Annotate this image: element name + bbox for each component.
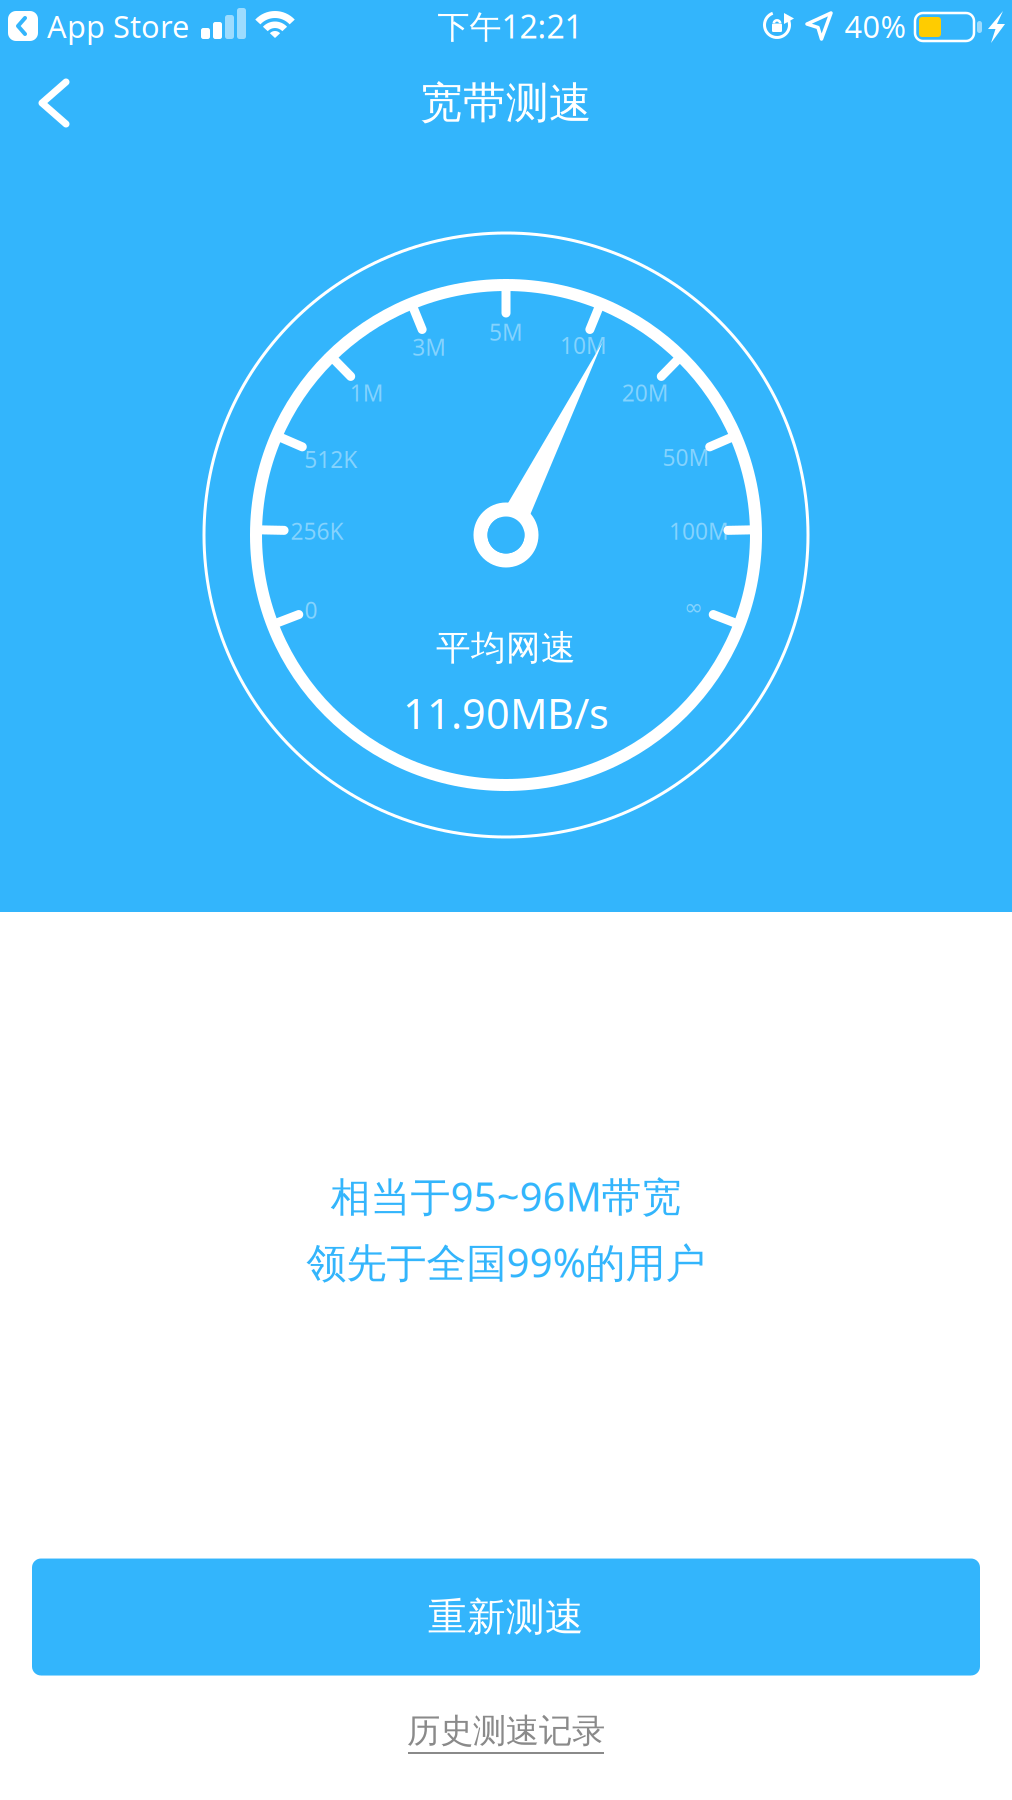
staticText: 下午12:21 — [437, 5, 582, 47]
staticText: 256K — [290, 516, 343, 546]
button[interactable]: Back — [2, 55, 114, 151]
staticText: 10M — [560, 330, 607, 360]
staticText: 宽带测速 — [420, 77, 592, 129]
staticText: ∞ — [684, 594, 703, 620]
staticText: 相当于95~96M带宽 — [330, 1169, 681, 1222]
staticText: 领先于全国99%的用户 — [306, 1235, 705, 1288]
staticText: 1M — [350, 378, 384, 408]
staticText: 平均网速 — [436, 627, 576, 669]
staticText: App Store — [47, 6, 189, 46]
staticText: 历史测速记录 — [407, 1710, 605, 1751]
staticText: 50M — [662, 442, 709, 472]
button[interactable]: 重新测速 — [32, 1558, 980, 1675]
staticText: 11.90MB/s — [403, 686, 609, 740]
button[interactable]: 历史测速记录 — [366, 1699, 646, 1763]
staticText: 512K — [304, 444, 357, 474]
staticText: 重新测速 — [428, 1593, 584, 1641]
staticText: 0 — [304, 595, 317, 625]
staticText: 3M — [412, 332, 446, 362]
staticText: 5M — [489, 317, 523, 347]
staticText: 100M — [669, 516, 729, 546]
staticText: 20M — [622, 378, 669, 408]
staticText: 40% — [844, 6, 905, 46]
